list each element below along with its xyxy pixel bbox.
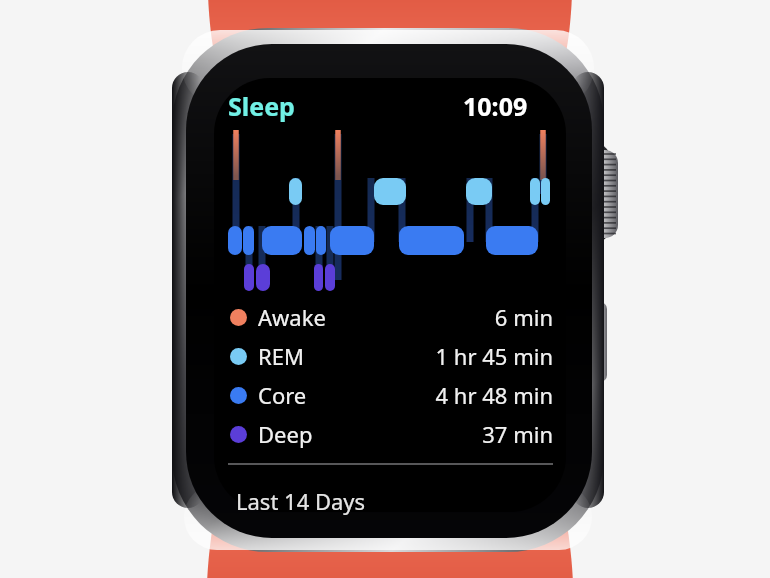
button[interactable]: Core xyxy=(230,377,553,413)
button[interactable]: Deep xyxy=(230,416,553,452)
staticText: 4 hr 48 min xyxy=(435,380,553,410)
staticText: Sleep xyxy=(228,89,295,123)
staticText: Awake xyxy=(258,302,326,332)
button[interactable]: Sleep xyxy=(228,89,295,123)
staticText: 10:09 xyxy=(463,89,528,123)
staticText: Deep xyxy=(258,419,313,449)
staticText: 6 min xyxy=(494,302,553,332)
staticText: 1 hr 45 min xyxy=(435,341,553,371)
button[interactable]: Last 14 Days xyxy=(236,486,366,516)
button[interactable]: Awake xyxy=(230,299,553,335)
staticText: REM xyxy=(258,341,304,371)
staticText: Core xyxy=(258,380,307,410)
button[interactable]: REM xyxy=(230,338,553,374)
staticText: Last 14 Days xyxy=(236,486,366,516)
staticText: 37 min xyxy=(482,419,553,449)
